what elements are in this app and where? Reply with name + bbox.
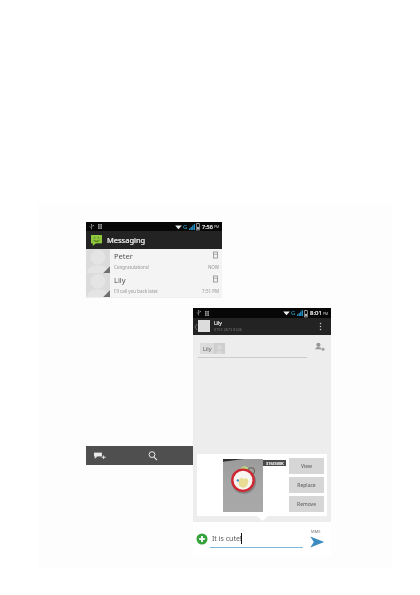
staticText: 7:56 xyxy=(202,223,213,230)
staticText: 8:01 xyxy=(310,309,322,317)
staticText: G xyxy=(291,309,296,317)
staticText: NOW xyxy=(195,264,219,270)
staticText: G xyxy=(183,223,188,231)
staticText: Remove xyxy=(297,501,316,508)
button[interactable]: Peter xyxy=(86,249,222,273)
button[interactable]: Send xyxy=(307,527,331,555)
staticText: 7:51 PM xyxy=(195,288,219,294)
staticText: Lily xyxy=(114,275,126,285)
button[interactable]: Add contact xyxy=(311,339,327,355)
staticText: Lily xyxy=(203,345,212,352)
button[interactable]: Lily xyxy=(200,343,225,354)
button[interactable]: Replace xyxy=(289,477,324,493)
button[interactable]: Remove xyxy=(289,496,324,512)
button[interactable]: Search xyxy=(140,446,166,465)
staticText: View xyxy=(301,463,312,470)
staticText: I'll call you back later. xyxy=(114,288,159,294)
staticText: Congratulations! xyxy=(114,264,150,270)
button[interactable]: Add attachment xyxy=(195,532,209,546)
staticText: Peter xyxy=(114,251,133,261)
staticText: PM xyxy=(323,311,329,316)
button[interactable]: 316/300K xyxy=(197,454,327,516)
button[interactable]: Messaging xyxy=(86,231,222,249)
button[interactable]: More options xyxy=(313,318,327,335)
staticText: Lily xyxy=(214,320,222,327)
staticText: PM xyxy=(214,224,220,229)
button[interactable]: Lily xyxy=(193,318,331,335)
staticText: It is cute! xyxy=(212,534,242,544)
button[interactable]: View xyxy=(289,458,324,474)
staticText: MMS xyxy=(311,529,321,534)
button[interactable]: Lily xyxy=(86,273,222,297)
staticText: Messaging xyxy=(107,235,146,245)
staticText: 0755 2672 8326 xyxy=(214,327,243,332)
staticText: Replace xyxy=(297,482,316,489)
staticText: 316/300K xyxy=(266,461,284,466)
button[interactable]: New message xyxy=(87,446,113,465)
